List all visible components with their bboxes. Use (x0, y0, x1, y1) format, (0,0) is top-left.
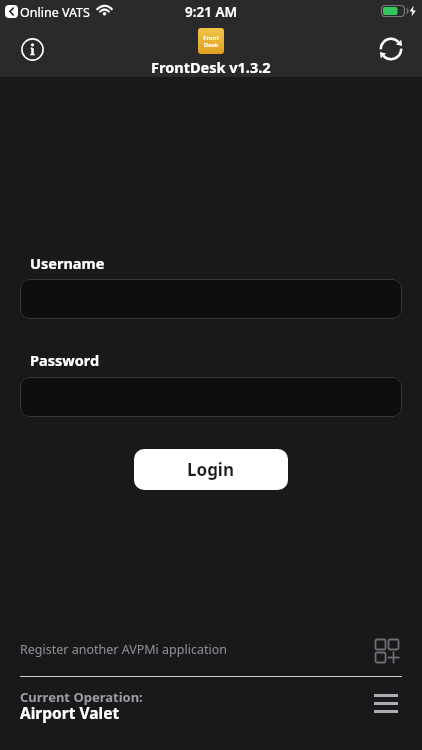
staticText: FrontDesk v1.3.2 (151, 57, 271, 77)
staticText: Online VATS (20, 4, 90, 21)
staticText: 9:21 AM (185, 3, 238, 21)
button[interactable] (20, 279, 402, 319)
staticText: Front Desk (203, 34, 219, 49)
button[interactable] (378, 36, 404, 62)
staticText: Login (187, 458, 235, 481)
button[interactable]: Register another AVPMi application (0, 628, 422, 672)
staticText: Password (30, 350, 100, 370)
staticText: Username (30, 253, 105, 273)
button[interactable]: Current Operation: (0, 677, 422, 750)
button[interactable]: Login (134, 449, 288, 490)
staticText: Airport Valet (20, 702, 120, 723)
button[interactable] (21, 38, 44, 61)
staticText: Current Operation: (20, 688, 143, 706)
button[interactable] (20, 377, 402, 417)
staticText: Register another AVPMi application (20, 641, 227, 658)
